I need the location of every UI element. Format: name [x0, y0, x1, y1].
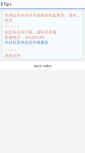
staticText: 投诉与建议: [4, 25, 19, 28]
staticText: 客服电话：400-000-000: [4, 35, 44, 40]
button[interactable]: Tips: [0, 0, 11, 8]
staticText: 本网站所有内容均由网友收集整理，请各位会员自觉遵守: [4, 12, 81, 18]
staticText: 相关: [4, 18, 12, 23]
staticText: 如您有任何问题，请联系客服: [4, 30, 56, 34]
staticText: 本站仅提供信息存储服务: [4, 40, 48, 45]
staticText: 感谢支持: [4, 53, 20, 58]
staticText: Tips: [3, 1, 11, 7]
staticText: back index: [33, 63, 51, 68]
button[interactable]: back index: [0, 62, 85, 69]
staticText: 版权声明: [4, 49, 16, 52]
